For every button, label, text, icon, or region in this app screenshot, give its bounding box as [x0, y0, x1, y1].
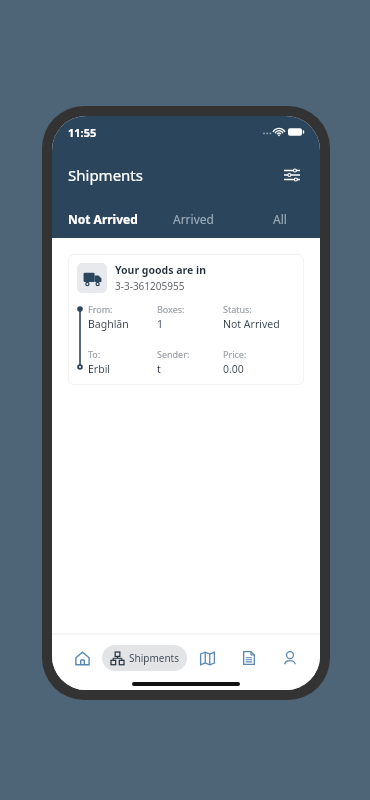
staticText: From: — [88, 303, 113, 315]
button[interactable]: Map — [187, 638, 228, 678]
staticText: Arrived — [173, 211, 214, 227]
staticText: Status: — [223, 303, 252, 315]
staticText: Shipments — [129, 651, 179, 665]
staticText: Boxes: — [157, 303, 185, 315]
button[interactable]: Not Arrived — [52, 200, 146, 238]
staticText: 11:55 — [68, 125, 97, 140]
staticText: Not Arrived — [68, 211, 138, 227]
button[interactable]: All — [240, 200, 320, 238]
staticText: Your goods are in — [115, 263, 206, 277]
staticText: Baghlān — [88, 317, 129, 331]
button[interactable]: Home — [62, 638, 102, 678]
button[interactable]: Arrived — [146, 200, 240, 238]
staticText: 0.00 — [223, 362, 244, 376]
staticText: Price: — [223, 348, 247, 360]
button[interactable]: Shipments — [102, 645, 187, 671]
staticText: All — [273, 211, 287, 227]
staticText: 1 — [157, 317, 164, 331]
button[interactable]: Your goods are in — [68, 254, 304, 385]
button[interactable]: Documents — [228, 638, 269, 678]
staticText: Sender: — [157, 348, 190, 360]
staticText: Not Arrived — [223, 317, 280, 331]
staticText: To: — [88, 348, 101, 360]
button[interactable]: Filter — [278, 161, 306, 189]
button[interactable]: Profile — [269, 638, 310, 678]
staticText: Shipments — [68, 165, 143, 185]
staticText: 3-3-361205955 — [115, 279, 185, 293]
staticText: t — [157, 362, 161, 376]
staticText: Erbil — [88, 362, 111, 376]
